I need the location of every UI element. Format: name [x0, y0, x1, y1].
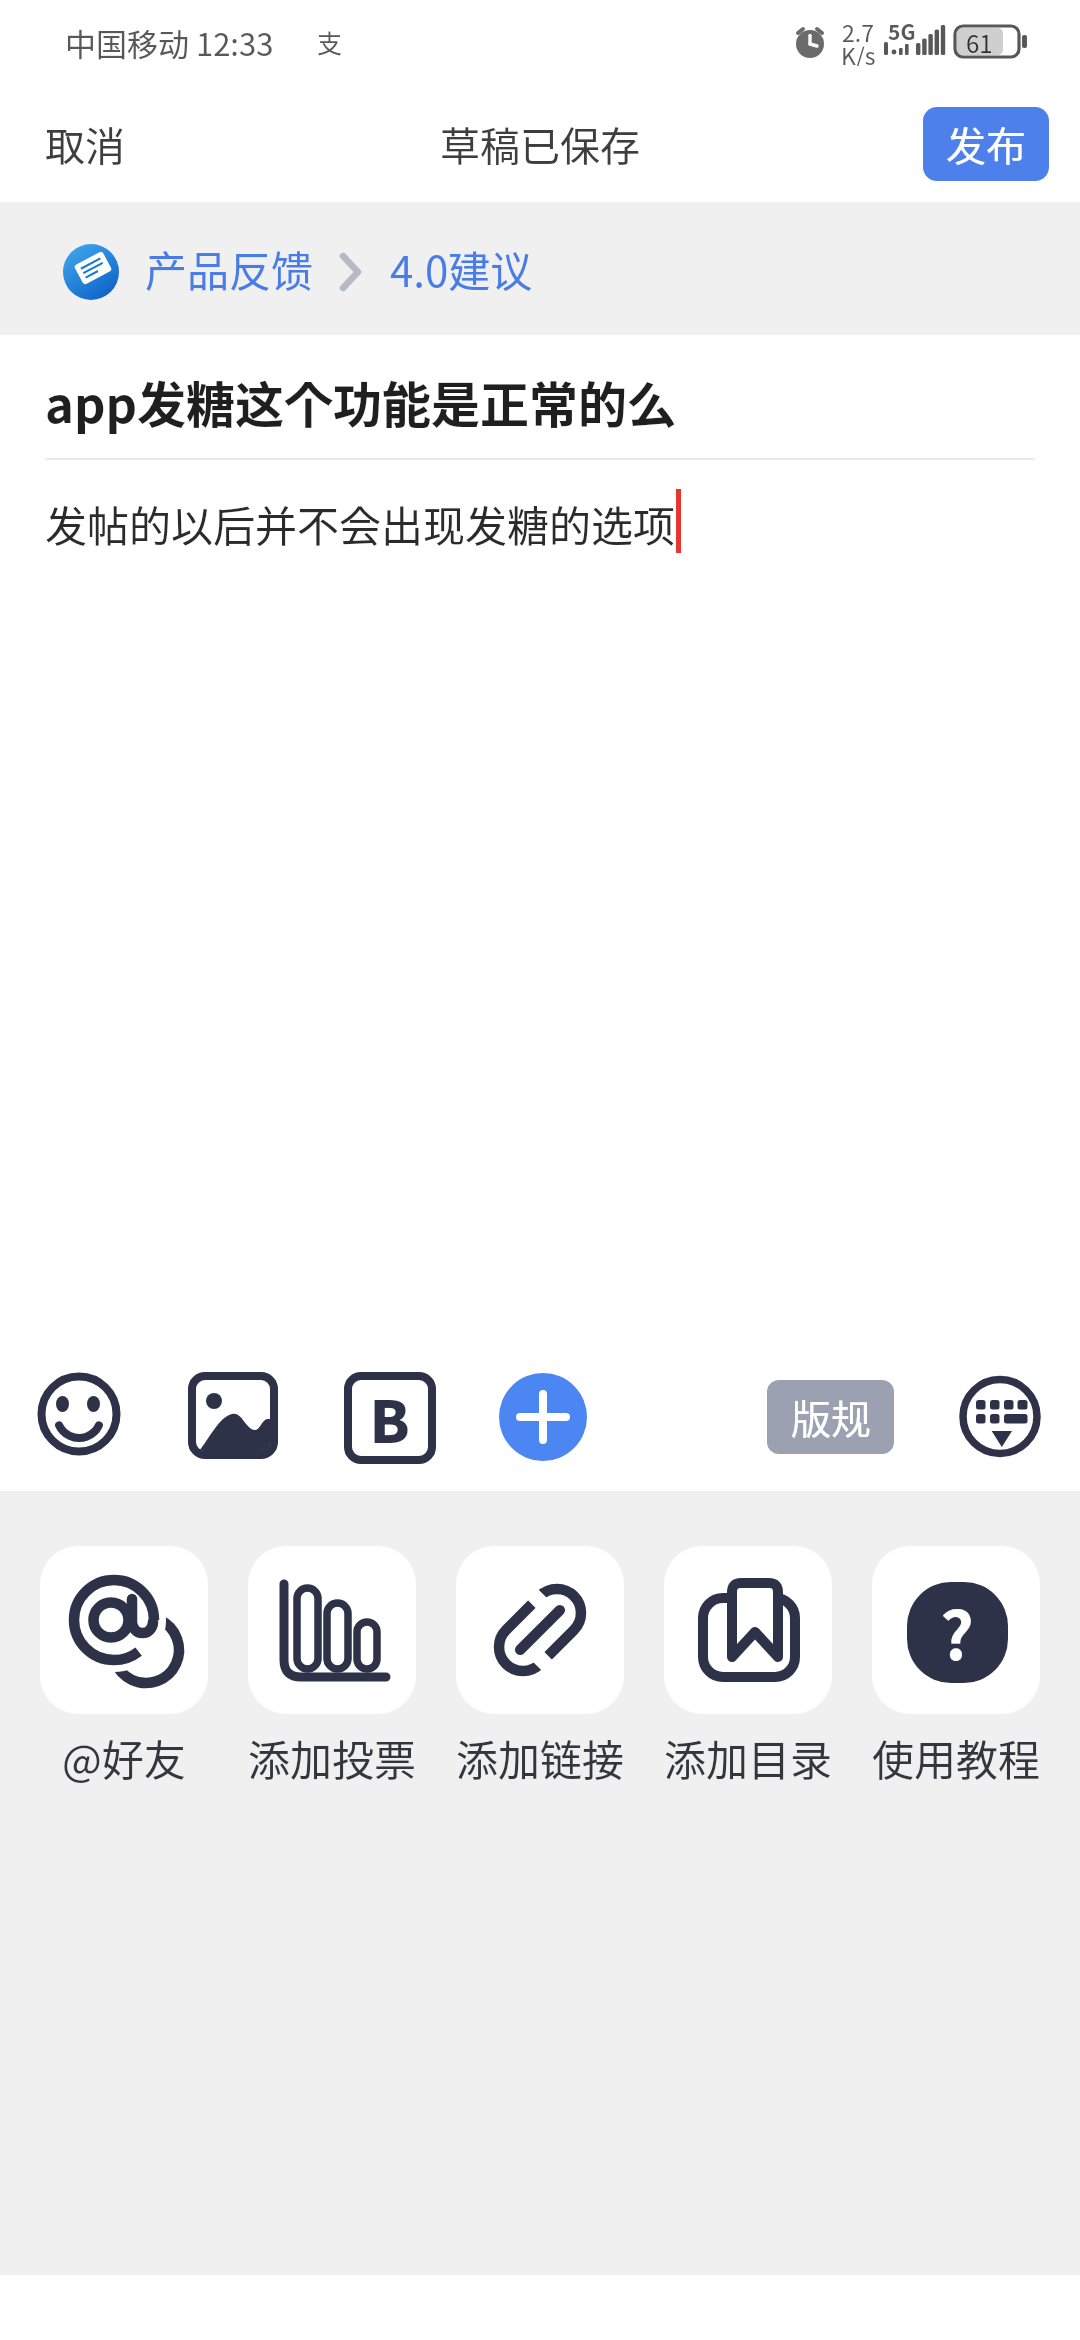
button[interactable]: 产品反馈 — [145, 202, 323, 335]
button[interactable] — [499, 1373, 587, 1461]
staticText: K/s — [841, 38, 876, 66]
staticText: 发布 — [946, 115, 1026, 173]
staticText: 2.7 — [842, 15, 874, 43]
button[interactable] — [664, 1546, 832, 1714]
staticText: 添加投票 — [248, 1727, 417, 1788]
staticText: 产品反馈 — [145, 238, 314, 299]
staticText: 4.0建议 — [390, 238, 533, 299]
staticText: @好友 — [62, 1727, 186, 1788]
button[interactable]: 版规 — [767, 1380, 894, 1454]
staticText: app发糖这个功能是正常的么 — [45, 366, 677, 437]
staticText: 添加链接 — [456, 1727, 625, 1788]
button[interactable] — [35, 1371, 127, 1463]
button[interactable] — [40, 1546, 208, 1714]
button[interactable] — [248, 1546, 416, 1714]
staticText: 版规 — [791, 1388, 871, 1446]
staticText: 61 — [966, 25, 993, 60]
staticText: 使用教程 — [872, 1727, 1041, 1788]
button[interactable] — [456, 1546, 624, 1714]
staticText: 取消 — [45, 115, 125, 173]
staticText: 草稿已保存 — [440, 115, 640, 173]
button[interactable] — [872, 1546, 1040, 1714]
button[interactable] — [187, 1371, 279, 1463]
button[interactable]: 发布 — [923, 107, 1049, 181]
button[interactable] — [956, 1372, 1046, 1462]
button[interactable]: 4.0建议 — [390, 202, 610, 335]
button[interactable]: 取消 — [30, 107, 140, 181]
staticText: 发帖的以后并不会出现发糖的选项 — [45, 493, 676, 554]
button[interactable] — [344, 1371, 436, 1463]
staticText: 中国移动 12:33 — [65, 20, 274, 65]
staticText: 添加目录 — [664, 1727, 833, 1788]
staticText: 支 — [317, 24, 343, 60]
staticText: 5G — [888, 16, 916, 42]
